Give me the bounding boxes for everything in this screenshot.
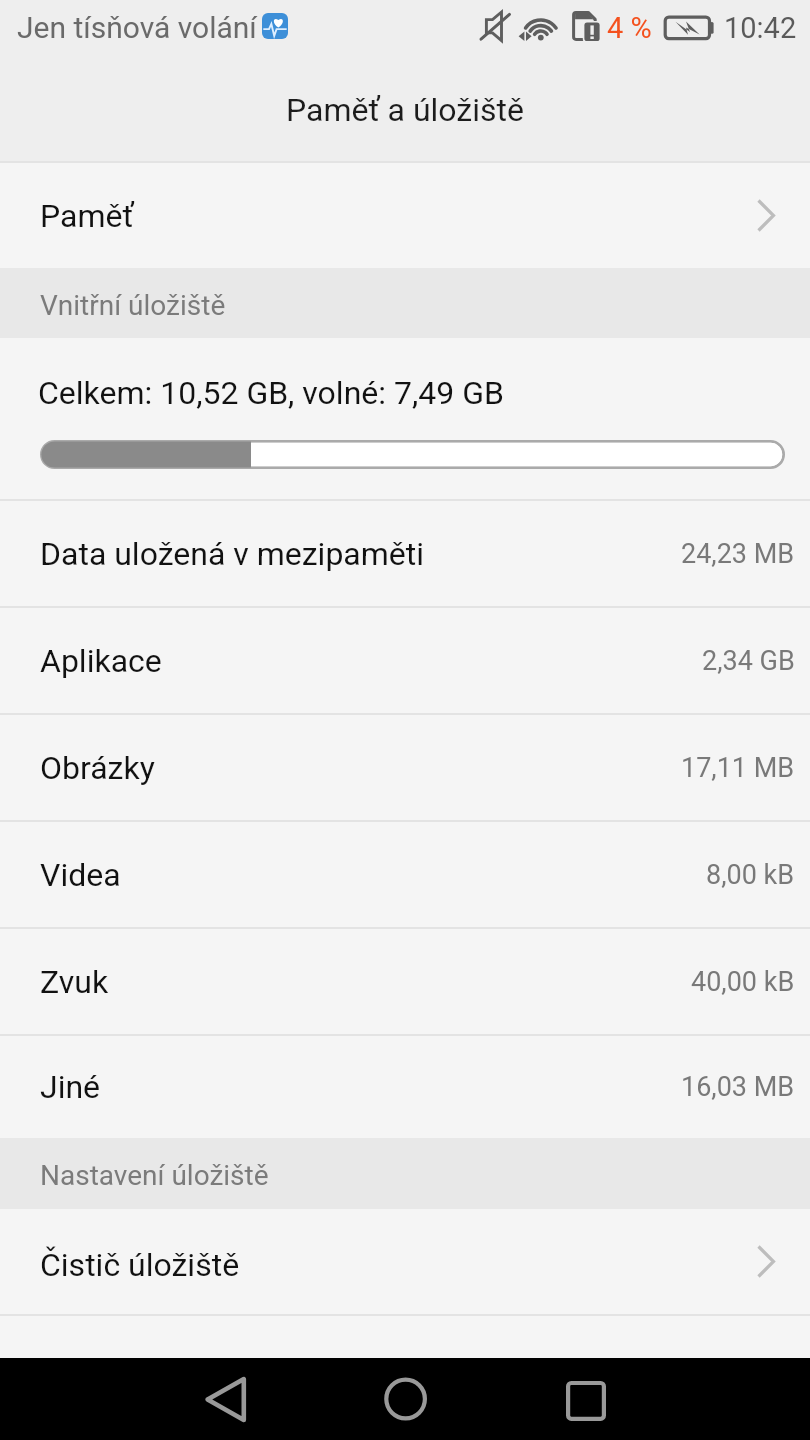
button[interactable]: Celkem: 10,52 GB, volné: 7,49 GB <box>0 338 810 499</box>
staticText: Jen tísňová volání <box>17 10 257 45</box>
button[interactable]: Home <box>365 1358 447 1440</box>
button[interactable]: Data uložená v mezipaměti <box>0 501 810 606</box>
button[interactable]: Zvuk <box>0 929 810 1034</box>
staticText: Vnitřní úložiště <box>40 289 226 322</box>
button[interactable]: Videa <box>0 822 810 927</box>
staticText: Nastavení úložiště <box>40 1159 269 1192</box>
button[interactable]: Recents <box>544 1358 626 1440</box>
button[interactable]: Aplikace <box>0 608 810 713</box>
staticText: Videa <box>40 856 121 894</box>
button[interactable]: Jiné <box>0 1036 810 1138</box>
staticText: 16,03 MB <box>681 1071 795 1103</box>
staticText: 24,23 MB <box>681 538 795 570</box>
staticText: Jiné <box>40 1068 101 1106</box>
staticText: Zvuk <box>40 963 109 1001</box>
staticText: 2,34 GB <box>702 645 795 677</box>
staticText: Data uložená v mezipaměti <box>40 535 425 573</box>
staticText: Celkem: 10,52 GB, volné: 7,49 GB <box>38 374 504 412</box>
button[interactable]: Paměť <box>0 163 810 268</box>
staticText: Paměť a úložiště <box>286 91 524 129</box>
button[interactable]: Obrázky <box>0 715 810 820</box>
staticText: 8,00 kB <box>706 859 795 891</box>
button[interactable]: Čistič úložiště <box>0 1209 810 1314</box>
staticText: Čistič úložiště <box>40 1246 240 1284</box>
staticText: 4 % <box>607 11 652 45</box>
staticText: 10:42 <box>724 11 797 45</box>
staticText: 17,11 MB <box>681 752 795 784</box>
staticText: Paměť <box>40 197 134 235</box>
staticText: Obrázky <box>40 749 155 787</box>
staticText: 40,00 kB <box>691 966 795 998</box>
staticText: Aplikace <box>40 642 162 680</box>
button[interactable]: Back <box>185 1358 267 1440</box>
